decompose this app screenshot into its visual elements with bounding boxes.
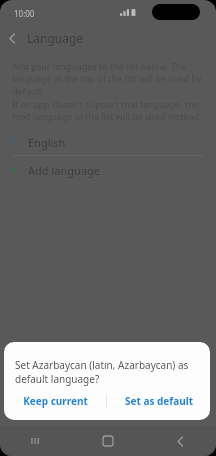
button[interactable]: Back [144,426,216,456]
button[interactable]: Home [72,426,144,456]
staticText: Add your languages to the list below. Th… [12,60,202,98]
staticText: Set as default [125,394,193,408]
button[interactable]: Back [0,26,24,50]
staticText: If an app doesn't support that language,… [12,98,202,123]
staticText: Add language [28,163,100,178]
button[interactable]: Recents [0,426,72,456]
staticText: 10:00 [14,8,35,19]
staticText: Set Azarbaycan (latın, Azarbaycan) as de… [15,358,196,386]
button[interactable]: Set as default [107,386,210,416]
staticText: Language [27,30,84,46]
button[interactable]: Keep current [4,386,106,416]
button[interactable]: Add language [0,156,216,184]
staticText: 1 [11,135,17,149]
staticText: English [28,135,66,150]
staticText: Keep current [23,394,88,408]
